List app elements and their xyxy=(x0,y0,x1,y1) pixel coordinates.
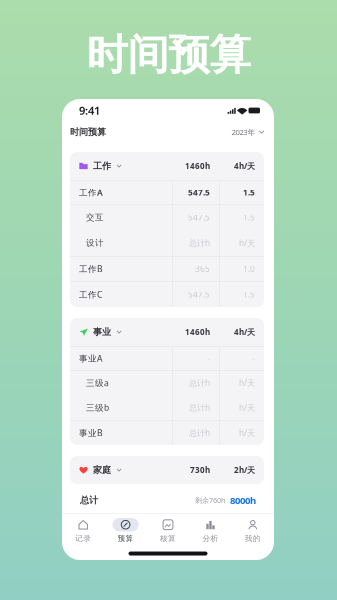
staticText: 1.5 xyxy=(243,212,255,223)
staticText: 1.5 xyxy=(243,289,255,300)
button[interactable]: 工作B xyxy=(70,257,264,281)
staticText: 核算 xyxy=(160,534,176,543)
button[interactable]: 工作C xyxy=(70,282,264,307)
staticText: 547.5 xyxy=(188,212,210,223)
staticText: 730h xyxy=(190,465,210,475)
staticText: 365 xyxy=(195,263,210,275)
button[interactable]: 设计 xyxy=(70,230,264,256)
button[interactable]: 工作 xyxy=(70,152,264,180)
staticText: 总计 xyxy=(80,494,98,506)
button[interactable]: 事业B xyxy=(70,421,264,445)
staticText: h/天 xyxy=(239,427,255,439)
button[interactable]: 家庭 xyxy=(70,456,264,484)
staticText: 事业 xyxy=(93,326,111,338)
staticText: 三级a xyxy=(86,377,109,389)
button[interactable]: 记录 xyxy=(62,515,104,545)
staticText: 4h/天 xyxy=(234,326,255,337)
button[interactable]: 分析 xyxy=(189,515,232,545)
staticText: 总计h xyxy=(189,237,210,249)
staticText: 4h/天 xyxy=(234,160,255,171)
staticText: 1460h xyxy=(185,327,210,337)
staticText: 家庭 xyxy=(93,464,111,476)
staticText: 事业B xyxy=(79,427,103,439)
staticText: 事业A xyxy=(79,353,102,364)
button[interactable]: 三级b xyxy=(70,395,264,420)
staticText: 1.0 xyxy=(243,263,255,275)
staticText: 2h/天 xyxy=(234,464,255,475)
staticText: 设计 xyxy=(86,238,104,248)
staticText: 工作B xyxy=(79,263,103,275)
staticText: h/天 xyxy=(239,237,255,249)
staticText: 总计h xyxy=(189,402,210,413)
button[interactable]: 我的 xyxy=(232,515,274,545)
staticText: 记录 xyxy=(75,534,91,543)
button[interactable]: 事业A xyxy=(70,347,264,370)
staticText: 总计h xyxy=(189,427,210,439)
staticText: h/天 xyxy=(239,402,255,413)
staticText: - xyxy=(252,353,255,364)
staticText: - xyxy=(207,353,210,364)
button[interactable]: 核算 xyxy=(147,515,189,545)
button[interactable]: 预算 xyxy=(104,515,147,545)
staticText: 时间预算 xyxy=(86,29,250,81)
staticText: 分析 xyxy=(202,534,218,543)
staticText: 我的 xyxy=(245,534,261,543)
staticText: 时间预算 xyxy=(70,126,106,138)
staticText: 547.5 xyxy=(188,187,210,198)
staticText: 工作 xyxy=(93,160,111,172)
staticText: 工作A xyxy=(79,187,103,198)
button[interactable]: 2023年 xyxy=(231,124,264,140)
staticText: 交互 xyxy=(86,212,104,223)
staticText: 547.5 xyxy=(188,289,210,300)
staticText: 1460h xyxy=(185,161,210,171)
staticText: 总计h xyxy=(189,377,210,389)
staticText: 2023年 xyxy=(231,127,255,137)
staticText: 9:41 xyxy=(79,103,100,118)
button[interactable]: 事业 xyxy=(70,318,264,346)
staticText: 预算 xyxy=(118,534,134,543)
staticText: 8000h xyxy=(230,494,256,507)
staticText: 1.5 xyxy=(243,187,255,198)
staticText: 三级b xyxy=(86,402,109,413)
staticText: h/天 xyxy=(239,377,255,389)
staticText: 剩余760h xyxy=(195,495,225,505)
button[interactable]: 交互 xyxy=(70,205,264,230)
button[interactable]: 三级a xyxy=(70,371,264,395)
button[interactable]: 工作A xyxy=(70,181,264,204)
staticText: 工作C xyxy=(79,289,102,300)
